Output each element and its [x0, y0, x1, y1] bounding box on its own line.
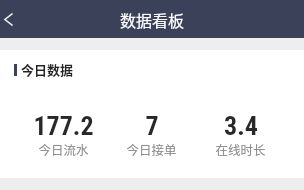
staticText: 数据看板: [120, 8, 185, 31]
staticText: 今日接单: [126, 140, 177, 158]
button[interactable]: 今日数据: [14, 60, 74, 79]
button[interactable]: 3.4: [196, 111, 285, 159]
staticText: 177.2: [33, 111, 94, 141]
button[interactable]: 177.2: [19, 111, 107, 159]
staticText: 在线时长: [215, 140, 266, 158]
button[interactable]: Back: [0, 0, 22, 38]
staticText: 3.4: [224, 111, 258, 141]
button[interactable]: 7: [107, 111, 196, 159]
staticText: 今日数据: [21, 60, 74, 79]
staticText: 7: [145, 111, 159, 141]
staticText: 今日流水: [38, 140, 89, 158]
